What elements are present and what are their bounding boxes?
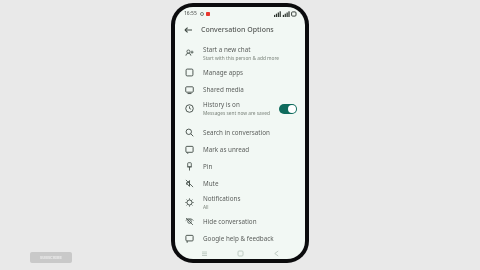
button[interactable]: History is on — [175, 98, 305, 119]
button[interactable]: Google help & feedback — [175, 230, 305, 247]
button[interactable]: Mute — [175, 175, 305, 192]
button[interactable]: Hide conversation — [175, 213, 305, 230]
staticText: Manage apps — [203, 68, 244, 77]
staticText: SUBSCRIBE — [40, 255, 62, 260]
staticText: 16:55 — [184, 10, 197, 17]
button[interactable]: Recents — [197, 247, 211, 259]
button[interactable]: SUBSCRIBE — [30, 252, 72, 263]
staticText: Messages sent now are saved — [203, 110, 270, 117]
staticText: Mark as unread — [203, 145, 250, 154]
staticText: Start a new chat — [203, 45, 251, 54]
staticText: Shared media — [203, 85, 244, 94]
staticText: Mute — [203, 179, 219, 188]
staticText: Google help & feedback — [203, 234, 274, 243]
button[interactable]: Home — [233, 247, 247, 259]
staticText: Start with this person & add more — [203, 55, 280, 62]
button[interactable]: Search in conversation — [175, 124, 305, 141]
button[interactable]: Back — [181, 23, 195, 37]
staticText: All — [203, 204, 209, 211]
staticText: Conversation Options — [201, 25, 274, 35]
button[interactable]: Start a new chat — [175, 43, 305, 64]
button[interactable]: Manage apps — [175, 64, 305, 81]
button[interactable]: History toggle — [279, 104, 297, 114]
staticText: Search in conversation — [203, 128, 270, 137]
button[interactable]: Shared media — [175, 81, 305, 98]
button[interactable]: Pin — [175, 158, 305, 175]
staticText: Pin — [203, 162, 213, 171]
staticText: Notifications — [203, 194, 241, 203]
staticText: Hide conversation — [203, 217, 257, 226]
button[interactable]: Notifications — [175, 192, 305, 213]
button[interactable]: Mark as unread — [175, 141, 305, 158]
staticText: History is on — [203, 100, 240, 109]
button[interactable]: Back — [269, 247, 283, 259]
